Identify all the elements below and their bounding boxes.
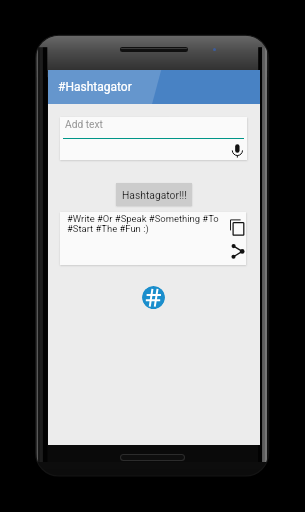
button[interactable]: #Hashtagator bbox=[48, 70, 260, 104]
button[interactable]: Hashtagator bbox=[142, 286, 165, 309]
button[interactable]: Share bbox=[230, 244, 246, 261]
staticText: #Hashtagator bbox=[58, 80, 132, 94]
staticText: #Write #Or #Speak #Something #To #Start … bbox=[67, 213, 222, 234]
button[interactable]: #Write #Or #Speak #Something #To #Start … bbox=[60, 212, 246, 265]
button[interactable]: Hashtagator!!! bbox=[116, 183, 192, 206]
button[interactable]: Voice input bbox=[232, 144, 243, 158]
staticText: Add text bbox=[65, 119, 103, 131]
staticText: Hashtagator!!! bbox=[122, 189, 187, 201]
button[interactable]: Add text bbox=[60, 117, 247, 160]
button[interactable]: Copy bbox=[229, 219, 245, 237]
